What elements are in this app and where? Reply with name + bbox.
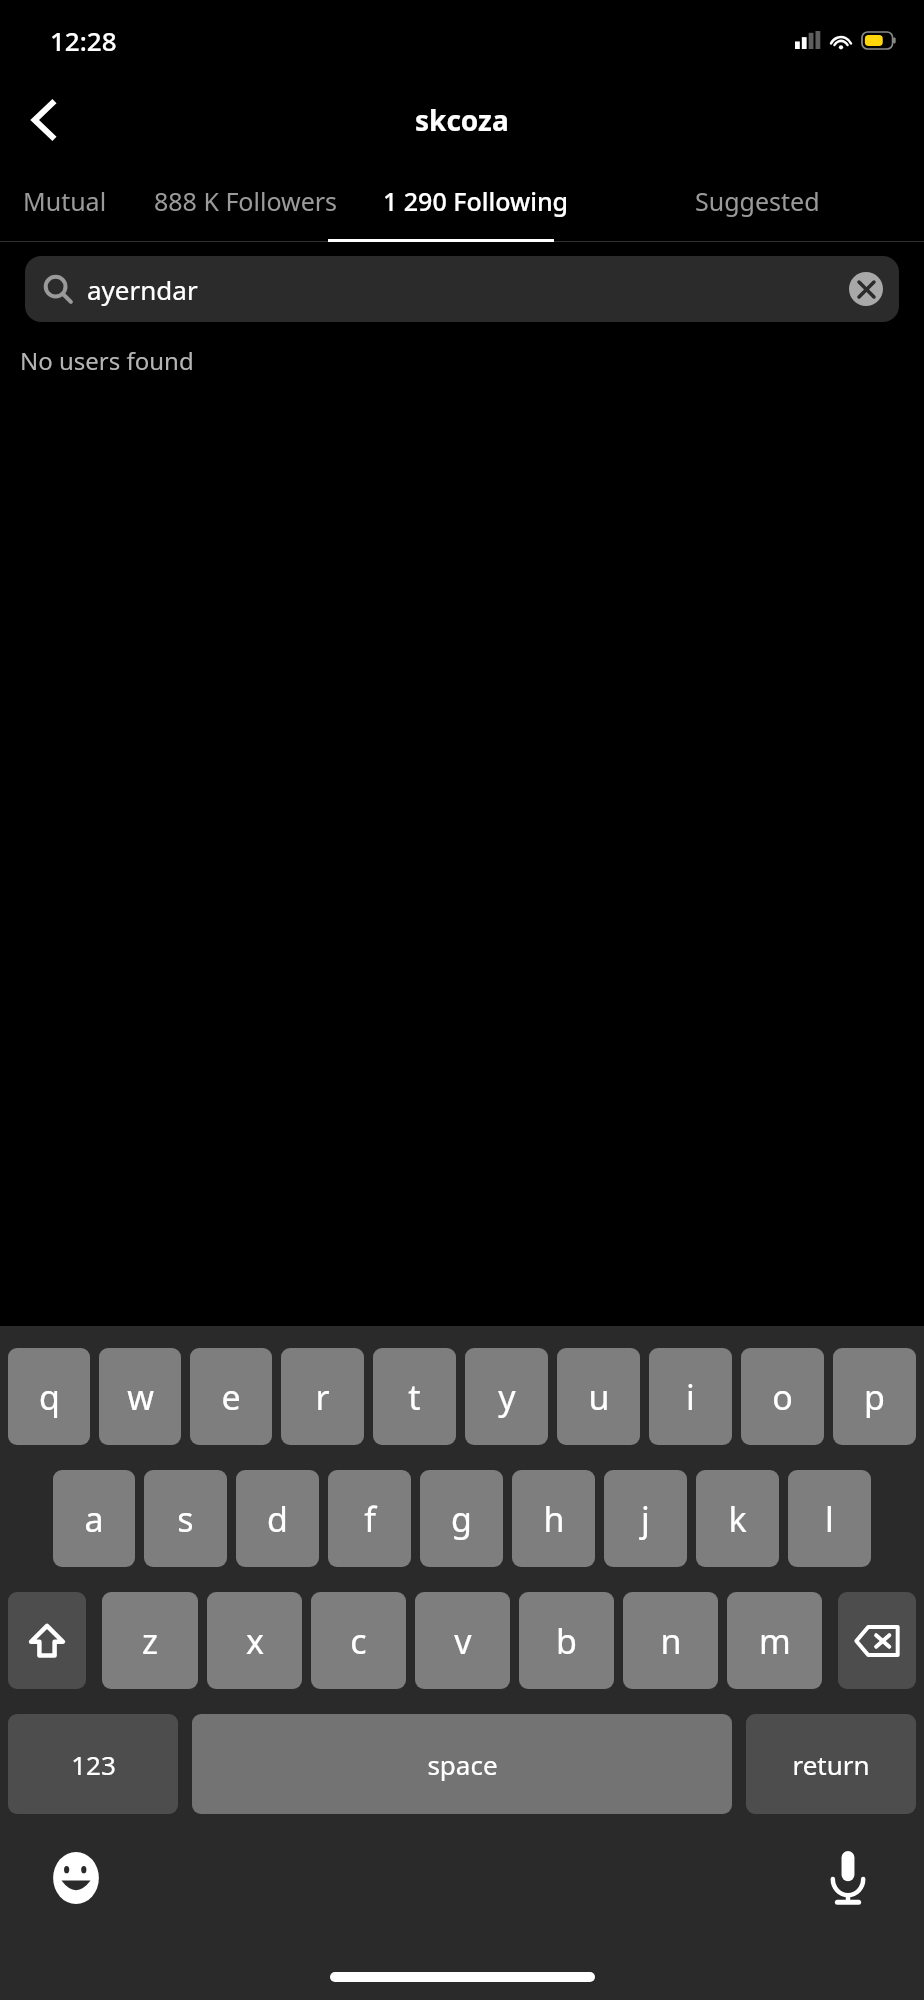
staticText: t [408, 1374, 421, 1420]
button[interactable]: Voice input [812, 1842, 884, 1914]
button[interactable]: u [557, 1348, 640, 1445]
staticText: o [772, 1374, 793, 1420]
button[interactable]: w [99, 1348, 181, 1445]
button[interactable]: h [512, 1470, 595, 1567]
button[interactable]: r [281, 1348, 364, 1445]
button[interactable]: return [746, 1714, 916, 1814]
button[interactable]: o [741, 1348, 824, 1445]
button[interactable]: q [8, 1348, 90, 1445]
staticText: b [556, 1618, 577, 1664]
staticText: q [39, 1374, 60, 1420]
staticText: m [759, 1618, 791, 1664]
button[interactable]: e [190, 1348, 272, 1445]
button[interactable]: Shift [8, 1592, 86, 1689]
button[interactable]: j [604, 1470, 687, 1567]
staticText: g [451, 1496, 472, 1542]
button[interactable]: Suggested [590, 160, 924, 242]
button[interactable]: t [373, 1348, 456, 1445]
button[interactable]: Back [14, 90, 74, 150]
staticText: h [543, 1496, 565, 1542]
button[interactable]: s [144, 1470, 227, 1567]
staticText: a [84, 1496, 104, 1542]
button[interactable]: Backspace [838, 1592, 916, 1689]
button[interactable]: Mutual [0, 160, 130, 242]
button[interactable]: a [53, 1470, 135, 1567]
button[interactable]: b [519, 1592, 614, 1689]
staticText: Mutual [23, 184, 107, 218]
staticText: c [350, 1618, 367, 1664]
staticText: n [660, 1618, 682, 1664]
staticText: w [127, 1374, 154, 1420]
button[interactable]: c [311, 1592, 406, 1689]
staticText: 123 [71, 1747, 116, 1782]
button[interactable]: 888 K Followers [130, 160, 362, 242]
button[interactable]: p [833, 1348, 916, 1445]
button[interactable]: d [236, 1470, 319, 1567]
button[interactable]: m [727, 1592, 822, 1689]
button[interactable]: x [207, 1592, 302, 1689]
button[interactable]: i [649, 1348, 732, 1445]
staticText: r [315, 1374, 330, 1420]
button[interactable]: Clear search [849, 272, 883, 306]
staticText: y [498, 1374, 516, 1420]
staticText: k [728, 1496, 747, 1542]
staticText: e [221, 1374, 241, 1420]
staticText: i [686, 1374, 695, 1420]
staticText: space [427, 1747, 498, 1782]
button[interactable]: 1 290 Following [362, 160, 590, 242]
button[interactable]: n [623, 1592, 718, 1689]
button[interactable]: k [696, 1470, 779, 1567]
button[interactable]: Emoji [40, 1842, 112, 1914]
button[interactable]: z [102, 1592, 198, 1689]
button[interactable]: space [192, 1714, 732, 1814]
button[interactable]: l [788, 1470, 871, 1567]
staticText: l [825, 1496, 834, 1542]
staticText: No users found [20, 344, 194, 377]
staticText: v [454, 1618, 472, 1664]
staticText: skcoza [415, 101, 509, 139]
staticText: j [641, 1496, 650, 1542]
staticText: 1 290 Following [383, 184, 569, 218]
staticText: 12:28 [50, 23, 117, 58]
button[interactable]: y [465, 1348, 548, 1445]
staticText: f [364, 1496, 376, 1542]
staticText: 888 K Followers [154, 184, 338, 218]
button[interactable]: v [415, 1592, 510, 1689]
button[interactable]: f [328, 1470, 411, 1567]
button[interactable]: ayerndar [25, 256, 899, 322]
staticText: s [177, 1496, 194, 1542]
button[interactable]: g [420, 1470, 503, 1567]
staticText: u [588, 1374, 610, 1420]
staticText: ayerndar [87, 272, 849, 307]
staticText: x [246, 1618, 264, 1664]
staticText: p [864, 1374, 885, 1420]
button[interactable]: 123 [8, 1714, 178, 1814]
staticText: d [267, 1496, 288, 1542]
staticText: return [792, 1747, 870, 1782]
staticText: Suggested [695, 184, 820, 218]
staticText: z [142, 1618, 158, 1664]
